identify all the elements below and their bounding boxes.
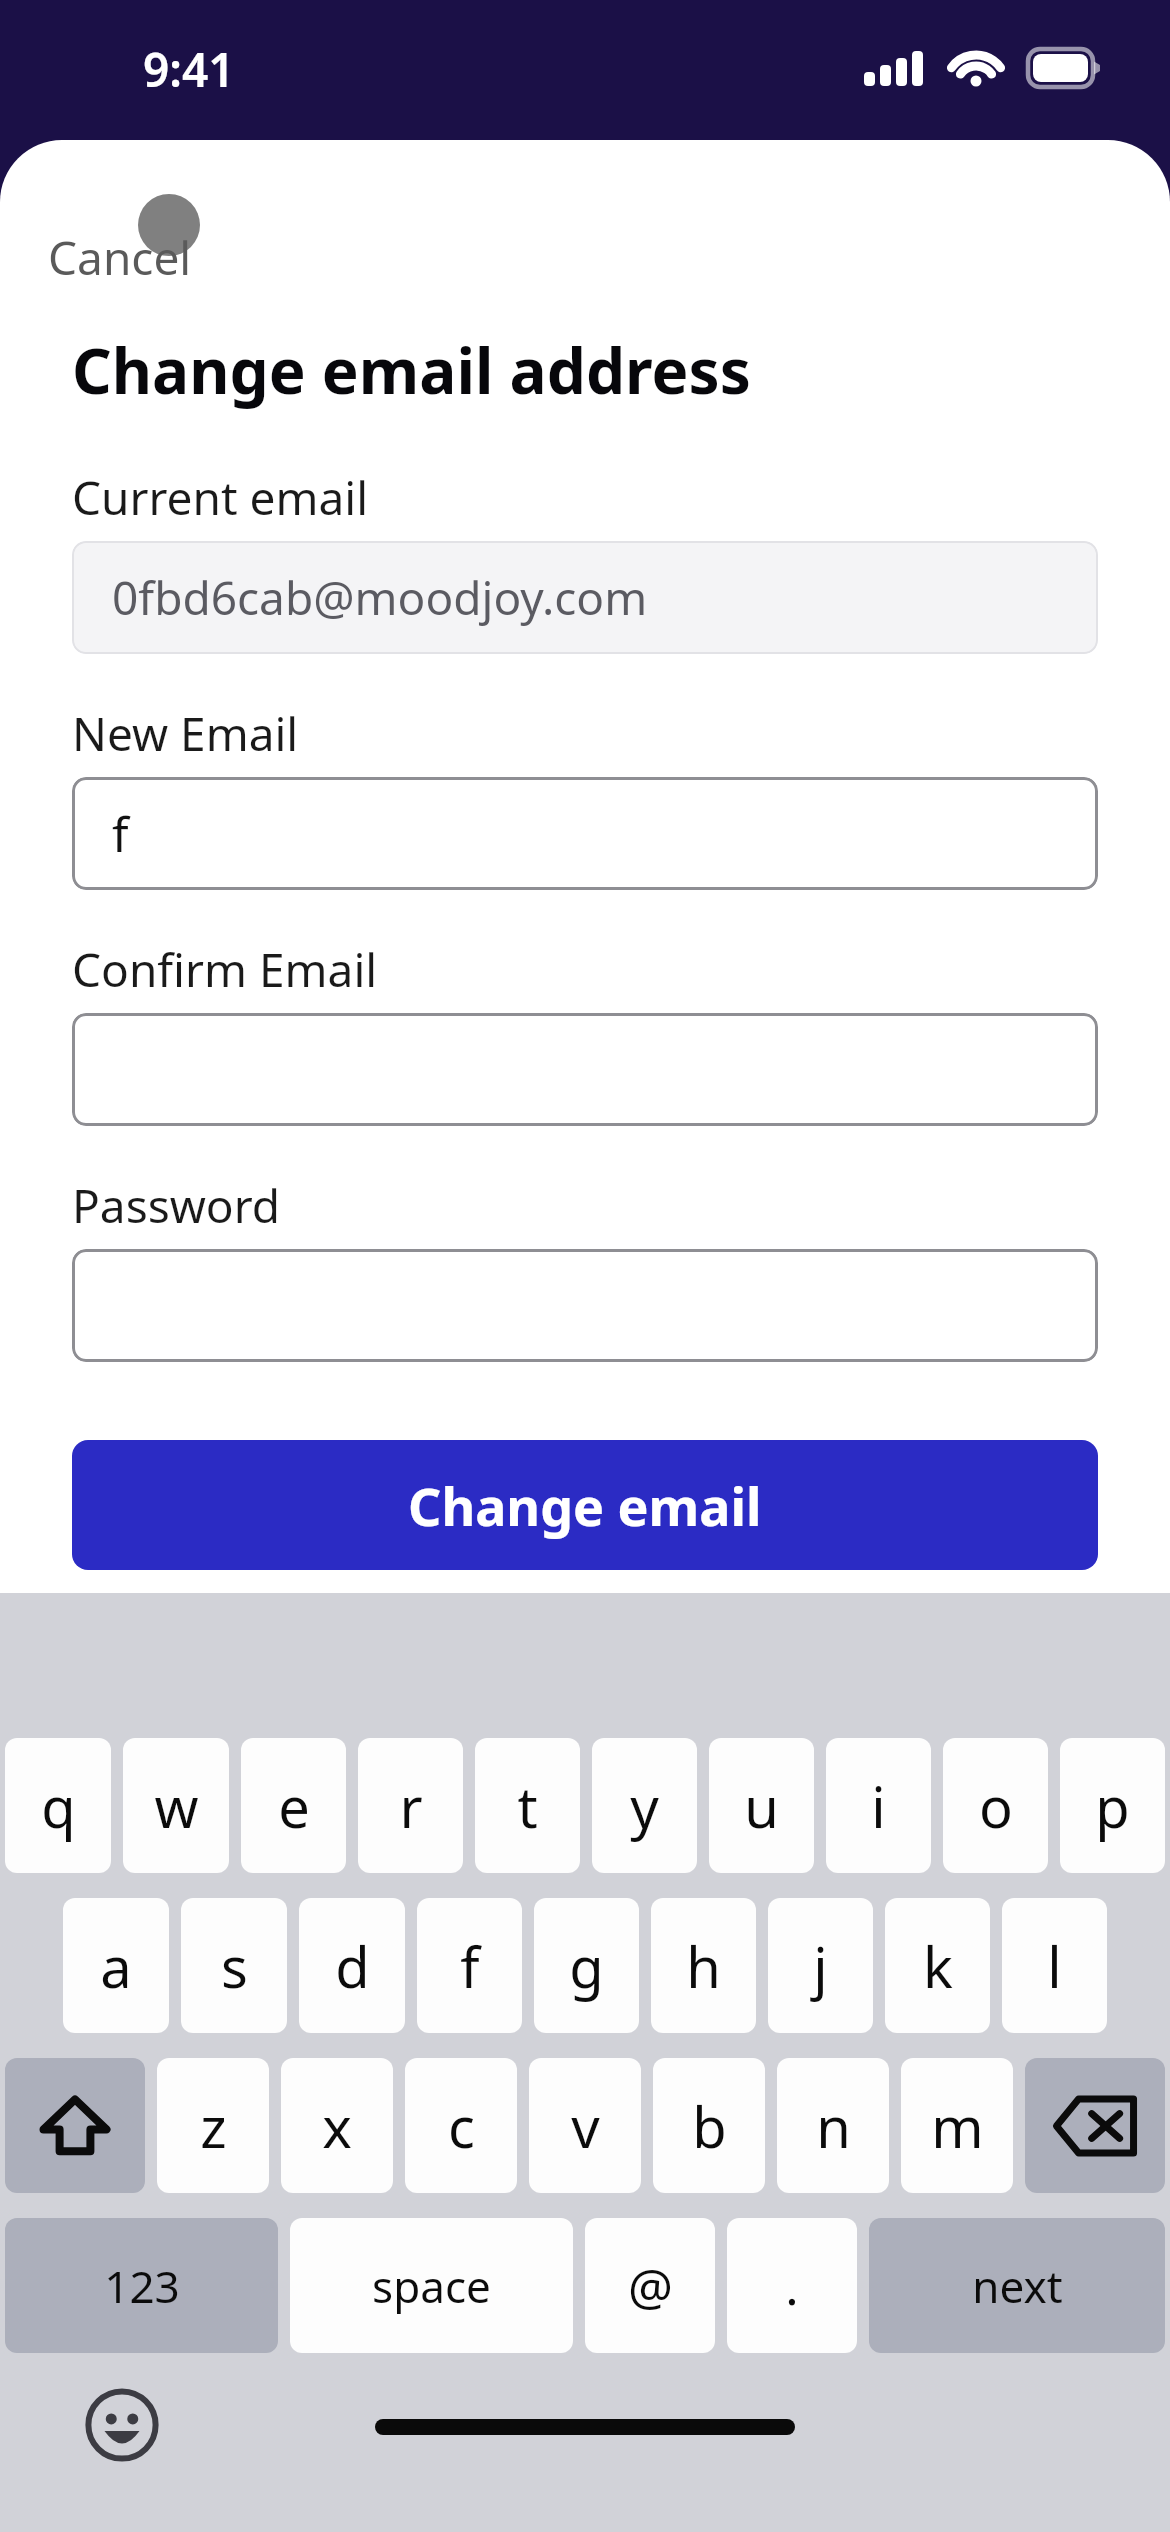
staticText: Confirm Email — [72, 938, 378, 1001]
button[interactable]: Shift — [5, 2058, 145, 2193]
staticText: m — [931, 2088, 984, 2164]
button[interactable]: u — [709, 1738, 814, 1873]
button[interactable]: w — [123, 1738, 229, 1873]
button[interactable]: z — [157, 2058, 269, 2193]
button[interactable]: e — [241, 1738, 346, 1873]
button[interactable]: i — [826, 1738, 931, 1873]
button[interactable]: c — [405, 2058, 517, 2193]
button[interactable]: s — [181, 1898, 287, 2033]
staticText: q — [41, 1768, 76, 1844]
staticText: j — [813, 1928, 828, 2004]
staticText: Change email address — [72, 328, 751, 412]
button[interactable]: m — [901, 2058, 1013, 2193]
button[interactable]: b — [653, 2058, 765, 2193]
button[interactable]: Emoji keyboard — [82, 2385, 162, 2465]
button[interactable]: r — [358, 1738, 463, 1873]
button[interactable]: j — [768, 1898, 873, 2033]
staticText: k — [923, 1928, 953, 2004]
button[interactable]: t — [475, 1738, 580, 1873]
staticText: b — [692, 2088, 727, 2164]
button[interactable]: p — [1060, 1738, 1165, 1873]
staticText: l — [1047, 1928, 1062, 2004]
staticText: Password — [72, 1174, 281, 1237]
button[interactable]: space — [290, 2218, 573, 2353]
staticText: New Email — [72, 702, 299, 765]
staticText: y — [630, 1768, 659, 1844]
staticText: 9:41 — [143, 38, 235, 101]
staticText: t — [517, 1768, 538, 1844]
staticText: x — [322, 2088, 352, 2164]
button[interactable]: g — [534, 1898, 639, 2033]
button[interactable]: n — [777, 2058, 889, 2193]
staticText: @ — [628, 2252, 673, 2320]
staticText: s — [221, 1928, 248, 2004]
staticText: h — [686, 1928, 721, 2004]
button[interactable]: f — [417, 1898, 522, 2033]
staticText: f — [460, 1928, 480, 2004]
button[interactable]: d — [299, 1898, 405, 2033]
staticText: a — [100, 1928, 132, 2004]
staticText: o — [979, 1768, 1013, 1844]
staticText: f — [112, 801, 129, 866]
staticText: next — [972, 2256, 1063, 2316]
staticText: w — [154, 1768, 199, 1844]
button[interactable]: Change email — [72, 1440, 1098, 1570]
staticText: Current email — [72, 466, 369, 529]
staticText: e — [278, 1768, 310, 1844]
button[interactable]: o — [943, 1738, 1048, 1873]
staticText: 0fbd6cab@moodjoy.com — [112, 566, 648, 629]
staticText: p — [1095, 1768, 1130, 1844]
staticText: Change email — [408, 1470, 762, 1541]
staticText: d — [335, 1928, 370, 2004]
staticText: z — [200, 2088, 227, 2164]
button[interactable] — [72, 1013, 1098, 1126]
staticText: space — [372, 2256, 491, 2316]
staticText: g — [569, 1928, 604, 2004]
button[interactable]: a — [63, 1898, 169, 2033]
button[interactable] — [72, 1249, 1098, 1362]
staticText: i — [871, 1768, 886, 1844]
button[interactable]: q — [5, 1738, 111, 1873]
button[interactable]: y — [592, 1738, 697, 1873]
button[interactable]: l — [1002, 1898, 1107, 2033]
button[interactable]: 123 — [5, 2218, 278, 2353]
staticText: n — [816, 2088, 851, 2164]
staticText: c — [448, 2088, 475, 2164]
button[interactable]: @ — [585, 2218, 715, 2353]
button[interactable]: . — [727, 2218, 857, 2353]
staticText: v — [571, 2088, 600, 2164]
button[interactable]: v — [529, 2058, 641, 2193]
button[interactable]: next — [869, 2218, 1165, 2353]
staticText: r — [399, 1768, 423, 1844]
button[interactable]: h — [651, 1898, 756, 2033]
staticText: u — [744, 1768, 779, 1844]
button[interactable]: Backspace — [1025, 2058, 1165, 2193]
button[interactable]: f — [72, 777, 1098, 890]
staticText: . — [785, 2252, 799, 2320]
button[interactable]: k — [885, 1898, 990, 2033]
staticText: 123 — [104, 2256, 180, 2316]
button[interactable]: Cancel — [48, 226, 192, 289]
button[interactable]: x — [281, 2058, 393, 2193]
button[interactable]: 0fbd6cab@moodjoy.com — [72, 541, 1098, 654]
staticText: Cancel — [48, 226, 192, 289]
